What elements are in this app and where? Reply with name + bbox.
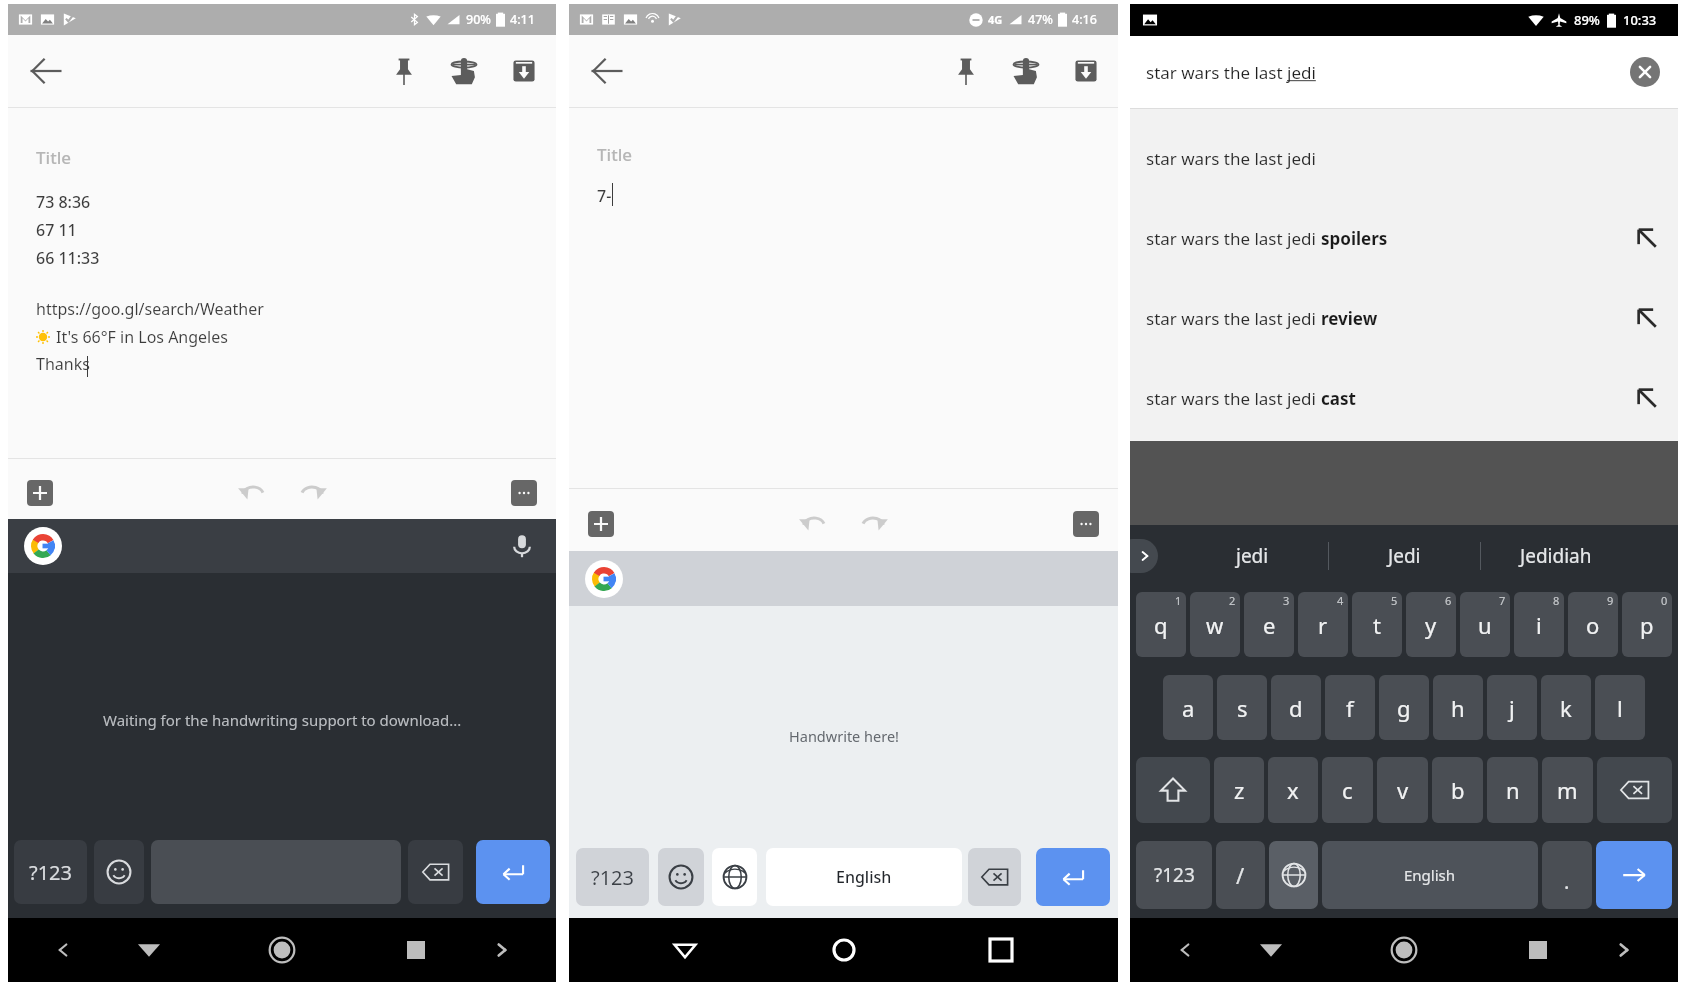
button[interactable]: Redo	[860, 509, 890, 539]
button[interactable]: Clear	[1630, 57, 1660, 87]
button[interactable]: star wars the last jedi	[1130, 278, 1678, 358]
button[interactable]: h	[1433, 675, 1483, 740]
button[interactable]: /	[1216, 841, 1265, 909]
button[interactable]: Back	[1259, 938, 1283, 962]
button[interactable]: i	[1514, 592, 1564, 657]
staticText: g	[1397, 693, 1411, 723]
staticText: 66 11:33	[36, 247, 100, 269]
button[interactable]: Undo	[797, 509, 827, 539]
button[interactable]: More options	[1073, 511, 1099, 537]
button[interactable]: Pin	[390, 57, 418, 85]
button[interactable]: Back	[137, 938, 161, 962]
button[interactable]: p	[1622, 592, 1672, 657]
button[interactable]: ?123	[576, 848, 649, 906]
button[interactable]: Home	[268, 936, 296, 964]
button[interactable]: ?123	[1136, 841, 1212, 909]
button[interactable]: Add	[27, 480, 53, 506]
button[interactable]: Back	[672, 937, 698, 963]
button[interactable]: m	[1542, 757, 1593, 823]
staticText: 3	[1283, 593, 1290, 608]
button[interactable]: y	[1406, 592, 1456, 657]
button[interactable]: v	[1377, 757, 1428, 823]
button[interactable]	[1596, 841, 1672, 909]
button[interactable]: Handwriting	[450, 57, 478, 85]
staticText: n	[1506, 775, 1520, 805]
staticText: It's 66°F in Los Angeles	[56, 326, 228, 348]
staticText: 10:33	[1623, 11, 1657, 29]
button[interactable]: Recents	[990, 939, 1012, 961]
staticText: star wars the last jedi	[1146, 387, 1321, 410]
button[interactable]: u	[1460, 592, 1510, 657]
button[interactable]	[408, 840, 463, 904]
button[interactable]	[1036, 848, 1110, 906]
button[interactable]: t	[1352, 592, 1402, 657]
button[interactable]: Next	[491, 939, 513, 961]
button[interactable]: Redo	[299, 478, 329, 508]
button[interactable]: Previous	[1174, 939, 1196, 961]
button[interactable]: Previous	[52, 939, 74, 961]
staticText: 0	[1661, 593, 1668, 608]
button[interactable]: e	[1244, 592, 1294, 657]
button[interactable]: b	[1432, 757, 1483, 823]
button[interactable]	[968, 848, 1021, 906]
staticText: star wars the last jedi	[1146, 61, 1316, 84]
staticText: w	[1206, 610, 1224, 640]
button[interactable]: Home	[1390, 936, 1418, 964]
button[interactable]: Back	[589, 53, 625, 89]
button[interactable]: Voice input	[508, 532, 536, 560]
button[interactable]: Jedidiah	[1480, 525, 1632, 587]
button[interactable]: Jedi	[1328, 525, 1480, 587]
button[interactable]: Undo	[236, 478, 266, 508]
staticText: Handwrite here!	[789, 726, 899, 746]
button[interactable]	[1269, 841, 1318, 909]
button[interactable]: s	[1217, 675, 1267, 740]
button[interactable]: Add	[588, 511, 614, 537]
button[interactable]: l	[1595, 675, 1645, 740]
button[interactable]: f	[1325, 675, 1375, 740]
button[interactable]: More options	[511, 480, 537, 506]
button[interactable]: jedi	[1176, 525, 1328, 587]
button[interactable]: ?123	[14, 840, 87, 904]
staticText: Jedi	[1388, 543, 1421, 569]
staticText: q	[1154, 610, 1168, 640]
button[interactable]: Home	[832, 938, 856, 962]
button[interactable]: k	[1541, 675, 1591, 740]
button[interactable]	[476, 840, 550, 904]
button[interactable]: j	[1487, 675, 1537, 740]
button[interactable]: star wars the last jedi	[1130, 36, 1678, 108]
button[interactable]: Archive	[510, 57, 538, 85]
button[interactable]	[1136, 757, 1210, 823]
button[interactable]	[1597, 757, 1672, 823]
button[interactable]: Pin	[952, 57, 980, 85]
button[interactable]: w	[1190, 592, 1240, 657]
staticText: Jedidiah	[1520, 543, 1592, 569]
button[interactable]: More suggestions	[1130, 539, 1158, 573]
button[interactable]	[658, 848, 704, 906]
button[interactable]: Archive	[1072, 57, 1100, 85]
button[interactable]: English	[766, 848, 962, 906]
button[interactable]: star wars the last jedi	[1130, 198, 1678, 278]
button[interactable]: a	[1163, 675, 1213, 740]
button[interactable]: English	[1322, 841, 1538, 909]
button[interactable]: star wars the last jedi	[1130, 358, 1678, 438]
button[interactable]: x	[1268, 757, 1318, 823]
button[interactable]	[94, 840, 144, 904]
button[interactable]: q	[1136, 592, 1186, 657]
button[interactable]: z	[1214, 757, 1264, 823]
button[interactable]: g	[1379, 675, 1429, 740]
button[interactable]: Back	[28, 53, 64, 89]
button[interactable]: Next	[1613, 939, 1635, 961]
button[interactable]: star wars the last jedi	[1130, 118, 1678, 198]
button[interactable]: .	[1542, 841, 1592, 909]
button[interactable]	[712, 848, 757, 906]
button[interactable]: r	[1298, 592, 1348, 657]
button[interactable]: o	[1568, 592, 1618, 657]
button[interactable]: Handwriting	[1012, 57, 1040, 85]
button[interactable]: d	[1271, 675, 1321, 740]
staticText: i	[1536, 610, 1542, 640]
button[interactable]: c	[1322, 757, 1373, 823]
button[interactable]: n	[1487, 757, 1538, 823]
